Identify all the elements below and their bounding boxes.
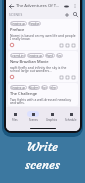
button[interactable]: Growing up (8, 83, 78, 106)
staticText: New Brazilian Movie (10, 59, 49, 64)
button[interactable]: Edit (64, 42, 70, 48)
staticText: The Adventures Of T... (16, 3, 60, 9)
button[interactable]: Delete (70, 42, 76, 48)
button[interactable]: Files (6, 111, 24, 122)
button[interactable]: Preview (62, 2, 71, 11)
staticText: Growing up (28, 54, 43, 58)
button[interactable]: Copy (58, 74, 64, 80)
button[interactable]: Graphics (42, 111, 61, 122)
staticText: Hamil (46, 54, 54, 58)
button[interactable]: Add scene (63, 11, 71, 18)
staticText: Write (0, 139, 85, 155)
staticText: SCENES (9, 13, 23, 17)
staticText: Growing up (11, 86, 26, 90)
staticText: Schedule (65, 118, 77, 122)
staticText: Noemi is based on my own life and people… (10, 33, 76, 41)
staticText: Growing up (11, 22, 26, 26)
staticText: Preface (10, 27, 25, 32)
staticText: Two fights with a well-dressed newsboy a… (10, 97, 76, 104)
staticText: Paradise (29, 22, 40, 26)
staticText: Scenes (29, 118, 38, 122)
button[interactable]: Growing up (8, 19, 78, 50)
staticText: Files (12, 118, 18, 122)
staticText: Epic (42, 86, 47, 90)
button[interactable]: Legend-ing (8, 51, 78, 82)
button[interactable]: More options (71, 2, 79, 10)
staticText: swift firefly and infinity the sky is th… (10, 65, 76, 73)
button[interactable]: Search (71, 11, 79, 18)
staticText: other (50, 86, 57, 90)
button[interactable]: Copy (58, 42, 64, 48)
button[interactable]: Schedule (61, 111, 80, 122)
button[interactable]: Back (7, 2, 16, 11)
staticText: The Challenge (10, 91, 38, 96)
staticText: Modern (29, 86, 39, 90)
staticText: scenes (0, 157, 85, 173)
button[interactable]: Edit (64, 74, 70, 80)
staticText: Graphics (46, 118, 58, 122)
staticText: Sea (57, 54, 62, 58)
button[interactable]: Scenes (24, 111, 42, 122)
button[interactable]: Delete (70, 74, 76, 80)
staticText: Legend-ing (11, 54, 25, 58)
